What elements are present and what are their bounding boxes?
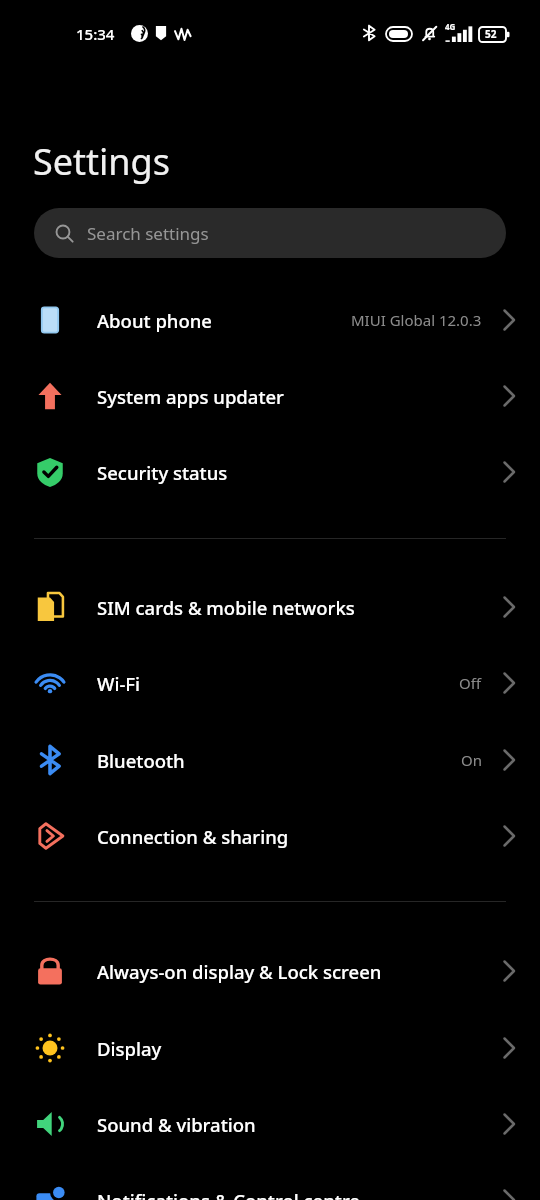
button[interactable]: Search settings xyxy=(34,208,506,258)
button[interactable]: Connection & sharing xyxy=(0,798,540,874)
button[interactable]: Display xyxy=(0,1010,540,1086)
button[interactable]: System apps updater xyxy=(0,358,540,434)
button[interactable]: Always-on display & Lock screen xyxy=(0,933,540,1009)
staticText: Notifications & Control centre xyxy=(97,1188,360,1200)
staticText: On xyxy=(461,750,482,770)
staticText: Connection & sharing xyxy=(97,824,289,849)
staticText: 15:34 xyxy=(76,24,115,44)
staticText: MIUI Global 12.0.3 xyxy=(351,310,482,330)
button[interactable]: Bluetooth xyxy=(0,722,540,798)
staticText: About phone xyxy=(97,308,212,333)
button[interactable]: Security status xyxy=(0,434,540,510)
button[interactable]: SIM cards & mobile networks xyxy=(0,569,540,645)
staticText: Security status xyxy=(97,460,228,485)
staticText: Wi-Fi xyxy=(97,671,141,696)
staticText: Settings xyxy=(33,137,170,186)
staticText: Always-on display & Lock screen xyxy=(97,959,382,984)
staticText: 52 xyxy=(485,27,497,41)
button[interactable]: Sound & vibration xyxy=(0,1086,540,1162)
button[interactable]: Wi-Fi xyxy=(0,645,540,721)
staticText: Display xyxy=(97,1036,162,1061)
staticText: Off xyxy=(459,673,482,693)
button[interactable]: About phone xyxy=(0,282,540,358)
staticText: Bluetooth xyxy=(97,748,185,773)
staticText: System apps updater xyxy=(97,384,284,409)
staticText: Sound & vibration xyxy=(97,1112,256,1137)
button[interactable]: Notifications & Control centre xyxy=(0,1162,540,1200)
staticText: SIM cards & mobile networks xyxy=(97,595,355,620)
staticText: Search settings xyxy=(87,222,209,245)
staticText: 4G xyxy=(445,21,456,32)
